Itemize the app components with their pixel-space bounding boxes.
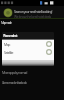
- button[interactable]: More apps by nomad: [2, 70, 27, 75]
- staticText: More apps by nomad: [2, 70, 27, 75]
- button[interactable]: Satellite: [2, 48, 54, 56]
- button[interactable]: Map: [2, 40, 54, 48]
- staticText: Like nomad on facebook: [2, 80, 27, 85]
- staticText: Save on your next hotel booking!: [14, 9, 52, 14]
- staticText: Map mode: [1, 20, 12, 25]
- button[interactable]: Advertisement banner: [0, 6, 64, 18]
- staticText: Map: [4, 42, 10, 47]
- staticText: We know the best hotel deals: [14, 14, 51, 19]
- button[interactable]: Like nomad on facebook: [2, 80, 27, 85]
- staticText: Please select: [3, 33, 17, 38]
- staticText: Satellite: [4, 50, 14, 55]
